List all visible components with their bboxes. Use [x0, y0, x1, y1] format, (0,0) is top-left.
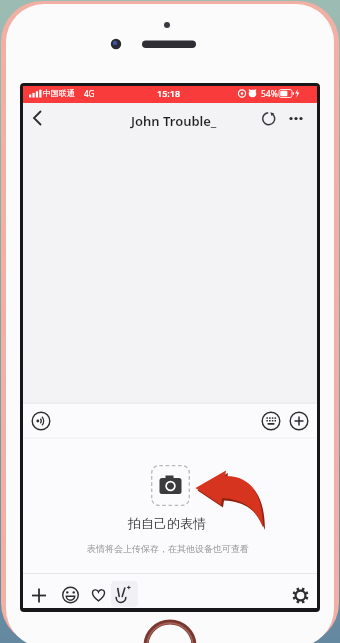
- staticText: John Trouble_: [131, 112, 217, 130]
- button[interactable]: [290, 585, 311, 606]
- button[interactable]: [151, 465, 190, 506]
- button[interactable]: [285, 108, 307, 129]
- staticText: 54%: [261, 88, 278, 100]
- button[interactable]: [29, 585, 49, 605]
- button[interactable]: [289, 411, 309, 431]
- button[interactable]: [112, 584, 133, 605]
- staticText: 中国联通: [43, 88, 75, 98]
- staticText: 拍自己的表情: [128, 515, 206, 531]
- staticText: 15:18: [157, 87, 181, 99]
- button[interactable]: [31, 411, 51, 431]
- button[interactable]: [60, 585, 81, 605]
- staticText: 4G: [84, 88, 95, 99]
- button[interactable]: [26, 106, 50, 132]
- button[interactable]: [258, 108, 279, 129]
- button[interactable]: [261, 411, 281, 431]
- button[interactable]: [89, 586, 108, 604]
- staticText: 表情将会上传保存，在其他设备也可查看: [87, 543, 249, 554]
